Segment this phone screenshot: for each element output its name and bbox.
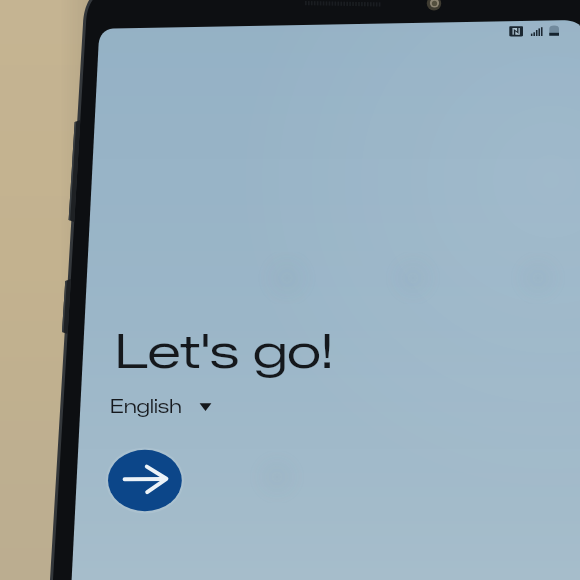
button[interactable]: Next xyxy=(108,449,182,511)
staticText: Let's go! xyxy=(115,323,334,379)
button[interactable] xyxy=(108,394,216,418)
staticText: English xyxy=(110,396,182,418)
